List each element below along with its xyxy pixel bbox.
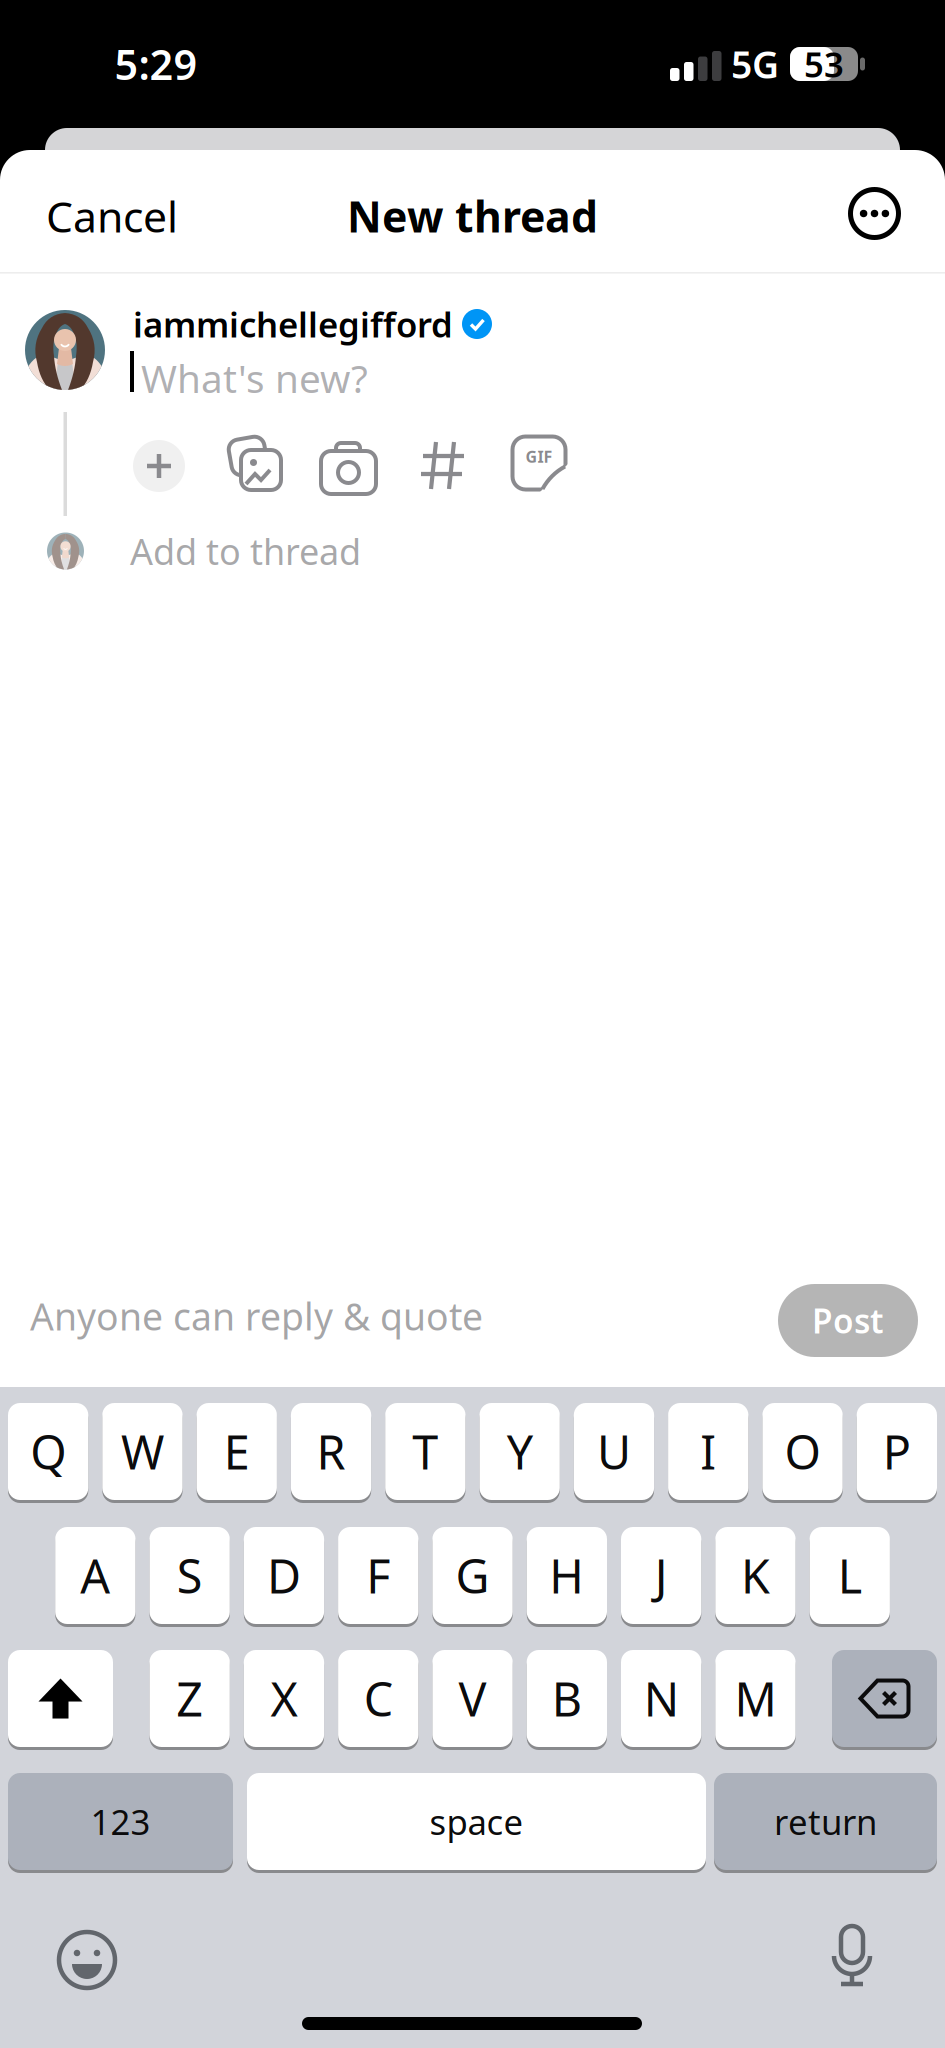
button[interactable]: A [55, 1527, 135, 1627]
button[interactable]: O [762, 1403, 843, 1503]
button[interactable]: Anyone can reply & quote [30, 1291, 483, 1341]
button[interactable]: Add to thread [47, 529, 361, 573]
button[interactable]: N [621, 1650, 701, 1750]
staticText: 5G [731, 39, 779, 89]
button[interactable]: W [102, 1403, 183, 1503]
staticText: return [774, 1798, 877, 1844]
staticText: Z [176, 1667, 203, 1729]
staticText: 53 [804, 41, 844, 87]
staticText: V [458, 1667, 486, 1729]
staticText: S [177, 1544, 203, 1606]
button[interactable]: 123 [8, 1773, 233, 1873]
staticText: N [644, 1667, 679, 1729]
button[interactable]: T [385, 1403, 465, 1503]
staticText: P [883, 1420, 911, 1482]
button[interactable]: Photo library [228, 437, 282, 491]
button[interactable]: G [432, 1527, 513, 1627]
staticText: U [597, 1420, 631, 1482]
staticText: Anyone can reply & quote [30, 1291, 483, 1341]
button[interactable]: Y [479, 1403, 560, 1503]
button[interactable]: More options [848, 187, 901, 240]
button[interactable]: What's new? [141, 356, 368, 400]
staticText: J [655, 1544, 668, 1606]
button[interactable]: Emoji [57, 1930, 117, 1990]
button[interactable]: Cancel [46, 188, 178, 244]
staticText: H [549, 1544, 584, 1606]
button[interactable]: Add media [133, 440, 185, 492]
staticText: I [700, 1420, 716, 1482]
staticText: G [455, 1544, 489, 1606]
button[interactable]: J [621, 1527, 701, 1627]
staticText: C [364, 1667, 393, 1729]
staticText: A [80, 1544, 110, 1606]
staticText: M [734, 1667, 776, 1729]
staticText: L [838, 1544, 862, 1606]
staticText: iammichellegifford [133, 301, 453, 347]
staticText: 5:29 [114, 37, 197, 91]
button[interactable]: Q [8, 1403, 88, 1503]
staticText: K [741, 1544, 770, 1606]
button[interactable]: Dictation [828, 1926, 876, 1988]
staticText: E [224, 1420, 250, 1482]
button[interactable]: B [527, 1650, 607, 1750]
button[interactable]: R [291, 1403, 371, 1503]
button[interactable]: Add topic [420, 441, 465, 490]
staticText: F [366, 1544, 390, 1606]
button[interactable]: U [574, 1403, 654, 1503]
button[interactable]: S [149, 1527, 230, 1627]
button[interactable]: F [338, 1527, 418, 1627]
staticText: space [429, 1798, 523, 1844]
button[interactable]: D [244, 1527, 324, 1627]
staticText: B [552, 1667, 582, 1729]
button[interactable]: I [668, 1403, 748, 1503]
button[interactable]: M [715, 1650, 796, 1750]
staticText: X [270, 1667, 297, 1729]
staticText: GIF [525, 446, 552, 467]
button[interactable]: Z [149, 1650, 230, 1750]
staticText: D [267, 1544, 301, 1606]
button[interactable]: C [338, 1650, 418, 1750]
staticText: Post [812, 1298, 884, 1343]
staticText: T [412, 1420, 438, 1482]
staticText: What's new? [141, 352, 368, 404]
button[interactable]: Shift [8, 1650, 113, 1750]
button[interactable]: Add GIF [514, 438, 568, 492]
staticText: Cancel [46, 188, 178, 244]
button[interactable]: Delete [832, 1650, 937, 1750]
staticText: Add to thread [130, 527, 361, 575]
button[interactable]: X [244, 1650, 324, 1750]
button[interactable]: return [714, 1773, 937, 1873]
staticText: New thread [347, 188, 598, 244]
staticText: R [316, 1420, 345, 1482]
button[interactable]: P [857, 1403, 937, 1503]
button[interactable]: Post [778, 1284, 918, 1357]
button[interactable]: E [197, 1403, 277, 1503]
staticText: Y [507, 1420, 533, 1482]
button[interactable]: H [527, 1527, 607, 1627]
button[interactable]: K [715, 1527, 796, 1627]
staticText: O [784, 1420, 820, 1482]
button[interactable]: V [432, 1650, 513, 1750]
button[interactable]: Camera [321, 437, 376, 490]
button[interactable]: space [247, 1773, 706, 1873]
staticText: 123 [90, 1798, 150, 1844]
button[interactable]: L [810, 1527, 890, 1627]
staticText: W [121, 1420, 164, 1482]
staticText: Q [30, 1420, 66, 1482]
